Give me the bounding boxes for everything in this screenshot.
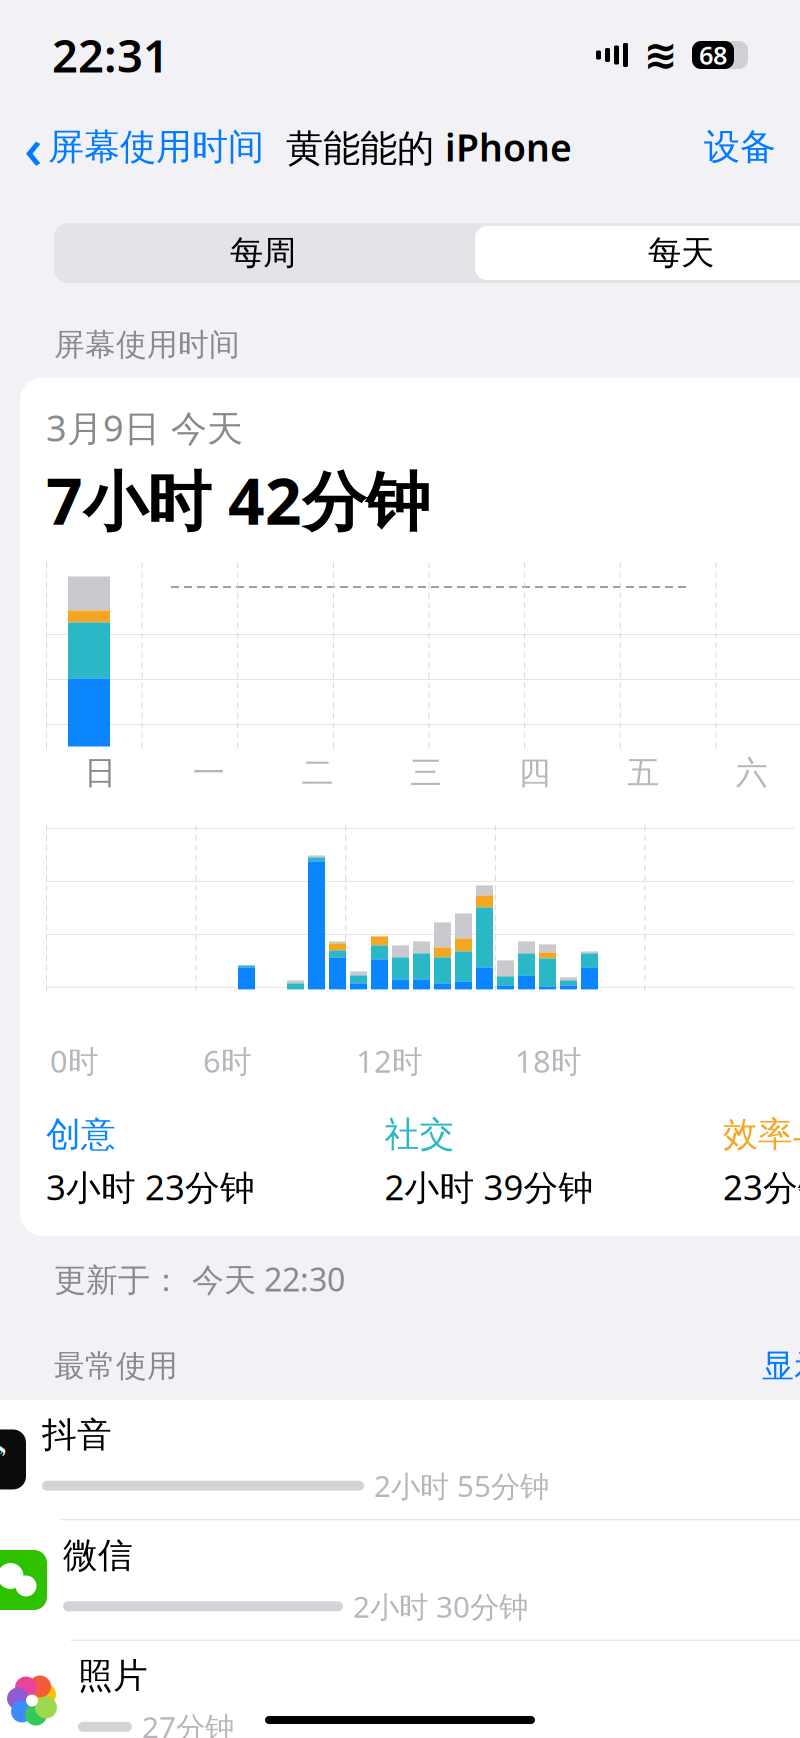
staticText: 黄能能的 iPhone xyxy=(286,122,572,172)
staticText: 23分钟 xyxy=(723,1164,800,1210)
staticText: 2小时 39分钟 xyxy=(384,1164,593,1210)
staticText: 27分钟 xyxy=(142,1707,234,1738)
button[interactable]: ♪ xyxy=(0,1400,800,1520)
staticText: ≋ xyxy=(644,32,678,78)
staticText: ♪ xyxy=(0,1435,7,1480)
staticText: 6时 xyxy=(203,1040,252,1081)
staticText: 社交 xyxy=(384,1113,454,1156)
button[interactable]: 微信 xyxy=(0,1520,800,1641)
button[interactable]: ‹ xyxy=(24,102,264,192)
staticText: ‹ xyxy=(24,110,42,184)
staticText: 2小时 55分钟 xyxy=(374,1466,549,1505)
staticText: 屏幕使用时间 xyxy=(54,326,240,364)
staticText: 12时 xyxy=(356,1040,423,1081)
staticText: 3小时 23分钟 xyxy=(46,1164,255,1210)
staticText: 微信 xyxy=(63,1534,133,1577)
staticText: 二 xyxy=(301,753,333,792)
staticText: 68 xyxy=(699,38,727,72)
staticText: 日 xyxy=(84,753,116,792)
staticText: 最常使用 xyxy=(54,1347,178,1385)
staticText: 每天 xyxy=(648,232,714,273)
staticText: 一 xyxy=(193,753,225,792)
staticText: 效率与财务 xyxy=(723,1113,800,1156)
button[interactable]: 每周 xyxy=(54,226,472,280)
staticText: 六 xyxy=(736,753,768,792)
button[interactable]: 照片 xyxy=(0,1641,800,1738)
staticText: ♪ xyxy=(0,1437,9,1482)
staticText: 五 xyxy=(627,753,659,792)
staticText: 更新于： 今天 22:30 xyxy=(54,1258,345,1300)
staticText: 18时 xyxy=(515,1040,582,1081)
staticText: 2小时 30分钟 xyxy=(353,1587,528,1626)
staticText: 三 xyxy=(410,753,442,792)
staticText: 每周 xyxy=(230,232,296,273)
staticText: 四 xyxy=(519,753,551,792)
button[interactable]: 显示类别 xyxy=(762,1346,800,1386)
staticText: 显示类别 xyxy=(762,1346,800,1386)
staticText: 0时 xyxy=(50,1040,99,1081)
staticText: 抖音 xyxy=(42,1414,112,1456)
button[interactable]: 每天 xyxy=(475,226,800,280)
staticText: 照片 xyxy=(78,1655,148,1697)
staticText: 7小时 42分钟 xyxy=(46,457,430,542)
staticText: 22:31 xyxy=(52,25,169,85)
staticText: 设备 xyxy=(704,125,776,169)
staticText: 3月9日 今天 xyxy=(46,404,243,451)
staticText: 创意 xyxy=(46,1113,116,1156)
button[interactable]: 设备 xyxy=(704,117,776,177)
staticText: 屏幕使用时间 xyxy=(48,125,264,169)
